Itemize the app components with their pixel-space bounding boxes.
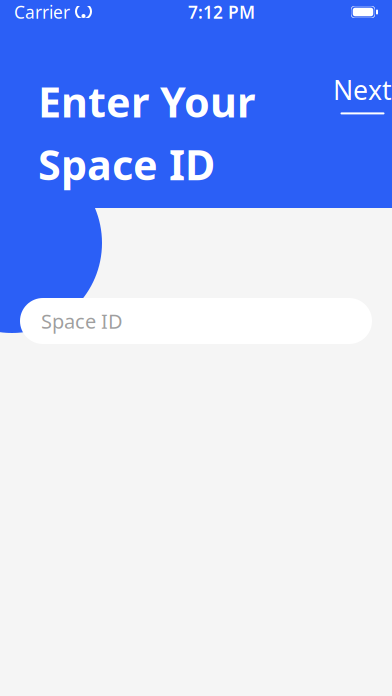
staticText: Carrier (14, 0, 70, 23)
staticText: 7:12 PM (188, 0, 255, 23)
staticText: Enter Your (38, 74, 255, 129)
button[interactable]: Space ID (20, 298, 372, 344)
staticText (70, 0, 75, 23)
staticText: Next (333, 72, 392, 107)
staticText: Space ID (41, 308, 123, 334)
button[interactable]: Next (329, 68, 392, 118)
staticText: Space ID (38, 137, 215, 192)
